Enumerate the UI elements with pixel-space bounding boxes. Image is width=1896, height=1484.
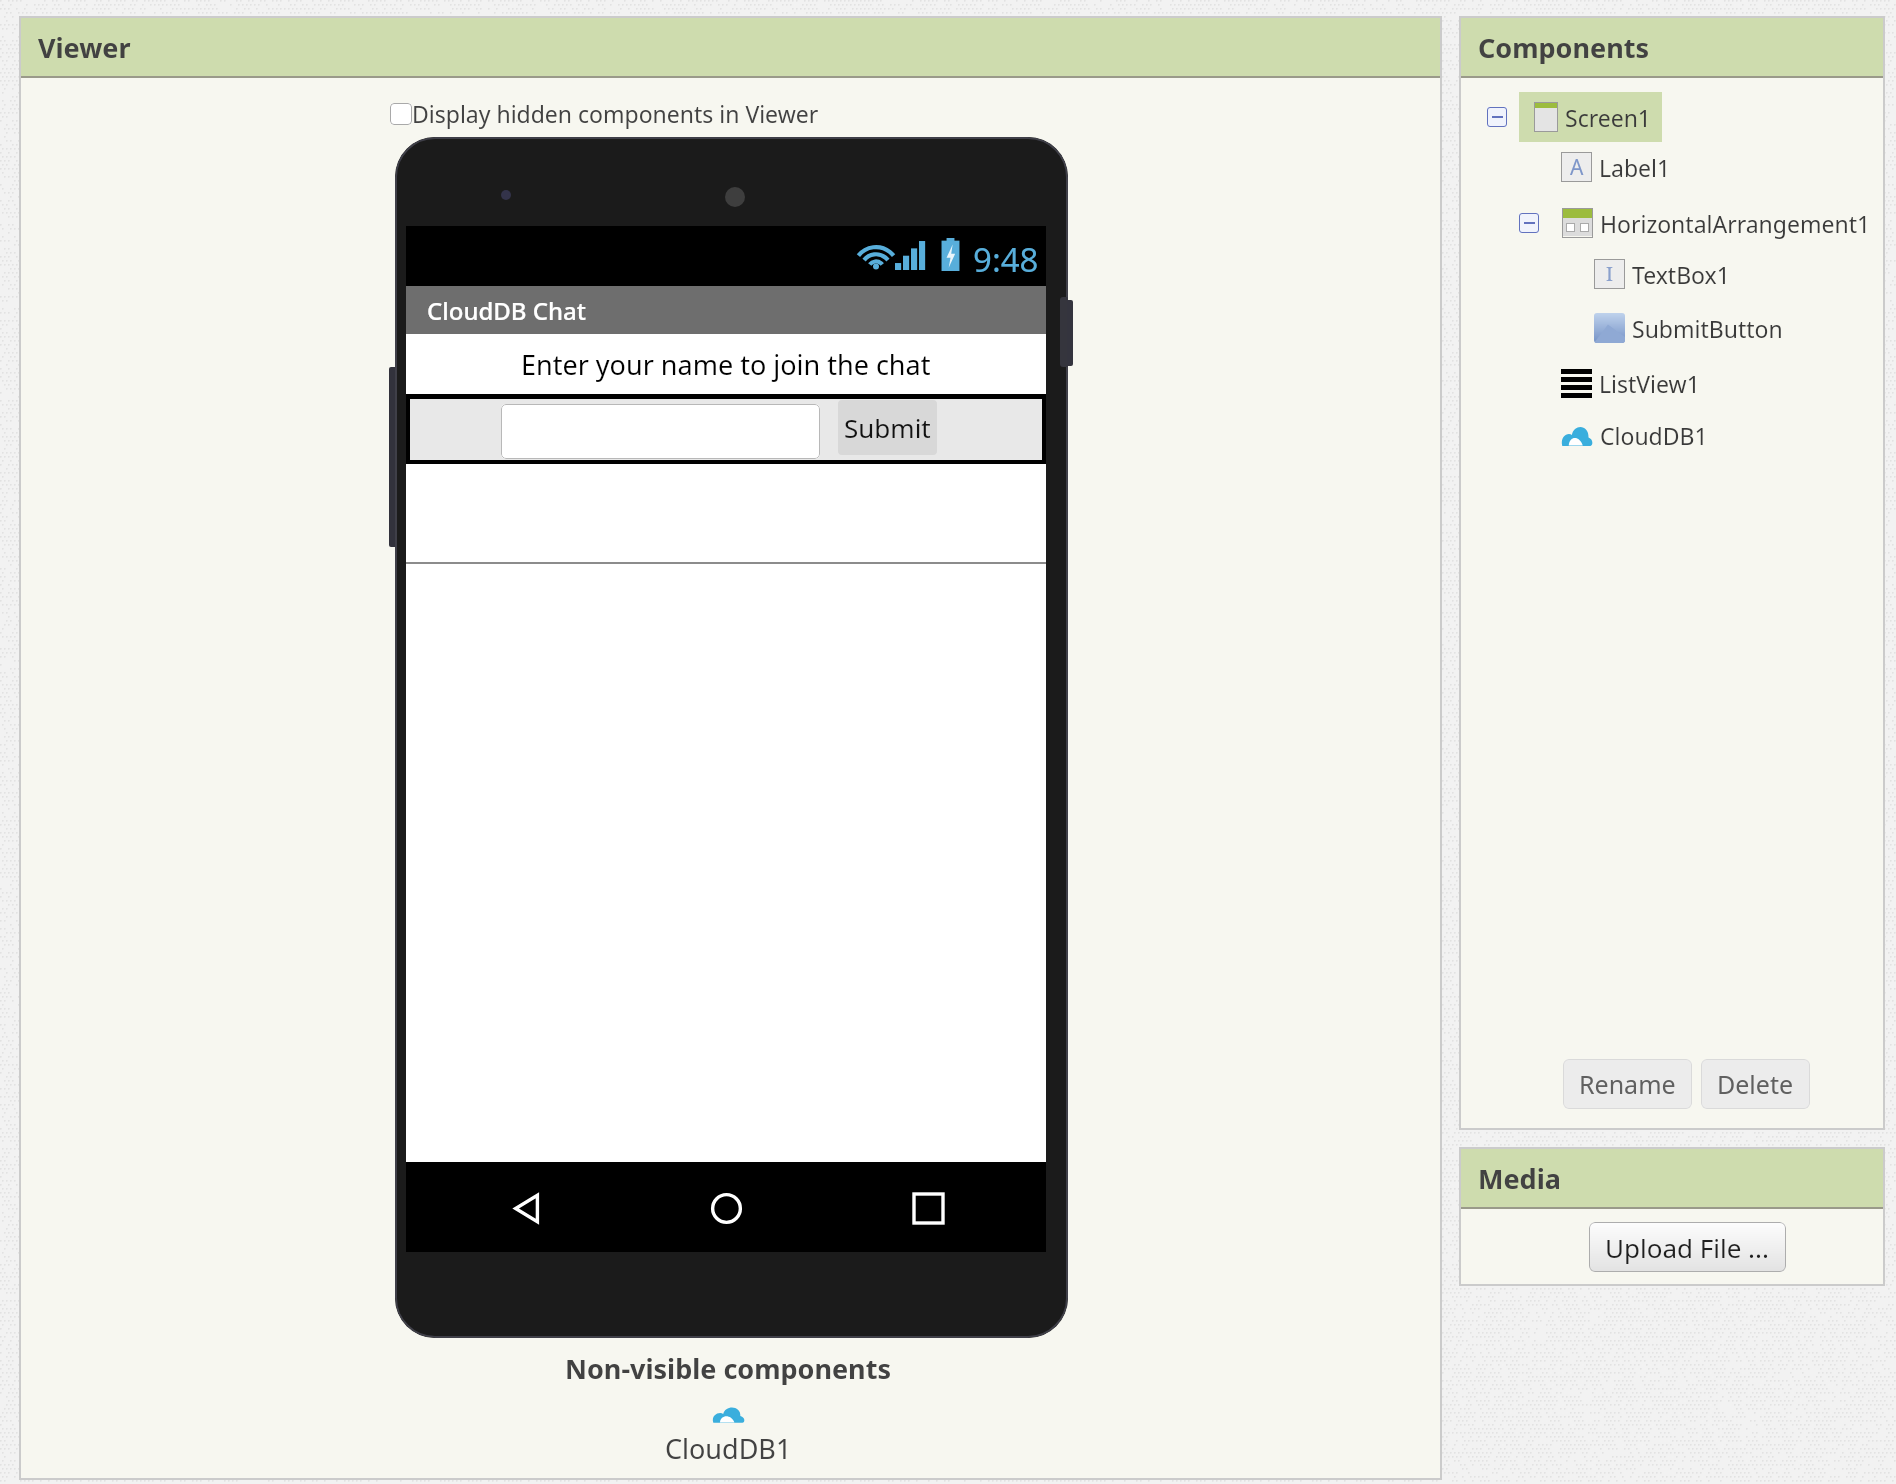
staticText: Rename bbox=[1579, 1067, 1676, 1101]
staticText: SubmitButton bbox=[1632, 313, 1783, 344]
staticText: Upload File ... bbox=[1605, 1230, 1770, 1265]
button[interactable]: Upload File ... bbox=[1589, 1222, 1786, 1272]
staticText: CloudDB1 bbox=[665, 1430, 792, 1467]
staticText: A bbox=[1570, 153, 1584, 182]
staticText: Media bbox=[1478, 1160, 1561, 1197]
button[interactable]: Rename bbox=[1563, 1059, 1692, 1109]
button[interactable]: Delete bbox=[1701, 1059, 1810, 1109]
button[interactable]: Collapse HorizontalArrangement1 bbox=[1519, 213, 1539, 233]
button[interactable]: ListView1 bbox=[1561, 358, 1700, 408]
button[interactable]: Display hidden components in Viewer bbox=[390, 103, 412, 125]
staticText: TextBox1 bbox=[1632, 259, 1730, 290]
button[interactable]: SubmitButton bbox=[1594, 303, 1783, 353]
staticText: Viewer bbox=[38, 29, 131, 66]
button[interactable]: Back bbox=[504, 1185, 550, 1231]
staticText: Components bbox=[1478, 29, 1649, 66]
staticText: Display hidden components in Viewer bbox=[412, 98, 819, 129]
button[interactable]: Collapse Screen1 bbox=[1487, 107, 1507, 127]
staticText: Non-visible components bbox=[565, 1350, 891, 1387]
button[interactable]: Submit bbox=[838, 400, 937, 455]
button[interactable]: CloudDB1 bbox=[1561, 410, 1708, 460]
staticText: CloudDB1 bbox=[1600, 420, 1708, 451]
staticText: Delete bbox=[1717, 1067, 1794, 1101]
button[interactable]: HorizontalArrangement1 bbox=[1562, 198, 1871, 248]
staticText: Label1 bbox=[1599, 152, 1671, 183]
staticText: 9:48 bbox=[973, 237, 1039, 282]
staticText: Screen1 bbox=[1565, 102, 1652, 133]
staticText: I bbox=[1606, 261, 1613, 287]
button[interactable]: I bbox=[1594, 249, 1730, 299]
button[interactable]: Home bbox=[703, 1185, 749, 1231]
staticText: CloudDB Chat bbox=[427, 294, 586, 327]
button[interactable]: A bbox=[1561, 142, 1671, 192]
staticText: Enter your name to join the chat bbox=[521, 346, 931, 383]
staticText: Submit bbox=[844, 410, 931, 445]
staticText: HorizontalArrangement1 bbox=[1600, 208, 1871, 239]
button[interactable]: Screen1 bbox=[1534, 92, 1652, 142]
button[interactable]: Recent apps bbox=[905, 1185, 951, 1231]
staticText: ListView1 bbox=[1599, 368, 1700, 399]
button[interactable]: TextBox1 bbox=[501, 404, 820, 459]
